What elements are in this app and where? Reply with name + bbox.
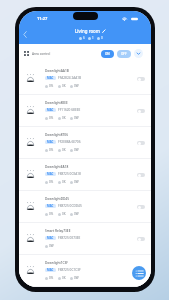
staticText: 0% xyxy=(49,84,54,88)
button[interactable]: ON xyxy=(101,50,114,58)
staticText: MAC xyxy=(47,236,54,240)
staticText: 0K xyxy=(62,212,66,216)
staticText: 0W xyxy=(74,180,79,184)
button[interactable]: Downlight1C3F xyxy=(19,255,151,286)
button[interactable]: Power toggle xyxy=(137,141,145,145)
button[interactable]: Power toggle xyxy=(137,77,145,81)
staticText: Area control xyxy=(32,52,51,56)
button[interactable]: DownlightDD45 xyxy=(19,191,151,222)
staticText: 0% xyxy=(49,180,54,184)
staticText: 0W xyxy=(74,116,79,120)
staticText: 0% xyxy=(49,148,54,152)
staticText: MAC xyxy=(47,268,54,272)
staticText: MAC xyxy=(47,76,54,80)
button[interactable]: Power toggle xyxy=(137,173,145,177)
staticText: F88725 0CEA18 xyxy=(58,172,81,176)
staticText: OFF xyxy=(121,52,127,56)
staticText: F88725 0CDD45 xyxy=(58,204,82,208)
staticText: DownlightEA18 xyxy=(45,165,69,169)
staticText: 0K xyxy=(62,148,66,152)
staticText: 11:27 xyxy=(37,16,48,21)
staticText: MAC xyxy=(47,204,54,208)
button[interactable]: Power toggle xyxy=(137,205,145,209)
staticText: Downlight1C3F xyxy=(45,261,69,265)
staticText: Living room xyxy=(75,28,100,34)
staticText: 0W xyxy=(74,276,79,280)
staticText: DownlightDD45 xyxy=(45,197,70,201)
button[interactable]: DownlightAA1B xyxy=(19,63,151,94)
staticText: FF11620 68EEE xyxy=(58,108,81,112)
staticText: 0K xyxy=(62,180,66,184)
staticText: 0K xyxy=(62,116,66,120)
staticText: F88725 0C1C3F xyxy=(58,268,81,272)
staticText: 0W xyxy=(74,212,79,216)
staticText: F88725 0E73EE xyxy=(58,236,81,240)
button[interactable]: DownlightEA18 xyxy=(19,159,151,190)
staticText: 1 xyxy=(92,36,94,40)
staticText: 0% xyxy=(49,212,54,216)
button[interactable]: Back xyxy=(19,28,31,40)
staticText: 0W xyxy=(74,148,79,152)
button[interactable]: Downlight8706 xyxy=(19,127,151,158)
staticText: Smart Relay73EE xyxy=(45,229,71,233)
button[interactable]: Expand xyxy=(134,49,143,58)
staticText: MAC xyxy=(47,108,54,112)
staticText: DownlightAA1B xyxy=(45,69,69,73)
staticText: ON xyxy=(105,52,110,56)
staticText: 0% xyxy=(49,116,54,120)
button[interactable]: Smart Relay73EE xyxy=(19,223,151,254)
staticText: Downlight8706 xyxy=(45,133,68,137)
button[interactable]: Power toggle xyxy=(137,109,145,113)
button[interactable]: Power toggle xyxy=(137,237,145,241)
staticText: 0K xyxy=(62,84,66,88)
staticText: Downlight8EEE xyxy=(45,101,68,105)
staticText: 0W xyxy=(74,84,79,88)
button[interactable]: Downlight8EEE xyxy=(19,95,151,126)
staticText: MAC xyxy=(47,140,54,144)
staticText: 0% xyxy=(49,276,54,280)
staticText: FFA2824 2AA1B xyxy=(58,76,82,80)
staticText: FF2E88A 6E706 xyxy=(58,140,81,144)
button[interactable]: OFF xyxy=(117,50,131,58)
staticText: 0 xyxy=(101,36,103,40)
button[interactable]: Device list xyxy=(132,266,146,280)
staticText: 6 xyxy=(83,36,85,40)
staticText: 0K xyxy=(62,276,66,280)
staticText: 0W xyxy=(49,244,54,248)
button[interactable]: Power toggle xyxy=(137,269,145,273)
staticText: MAC xyxy=(47,172,54,176)
